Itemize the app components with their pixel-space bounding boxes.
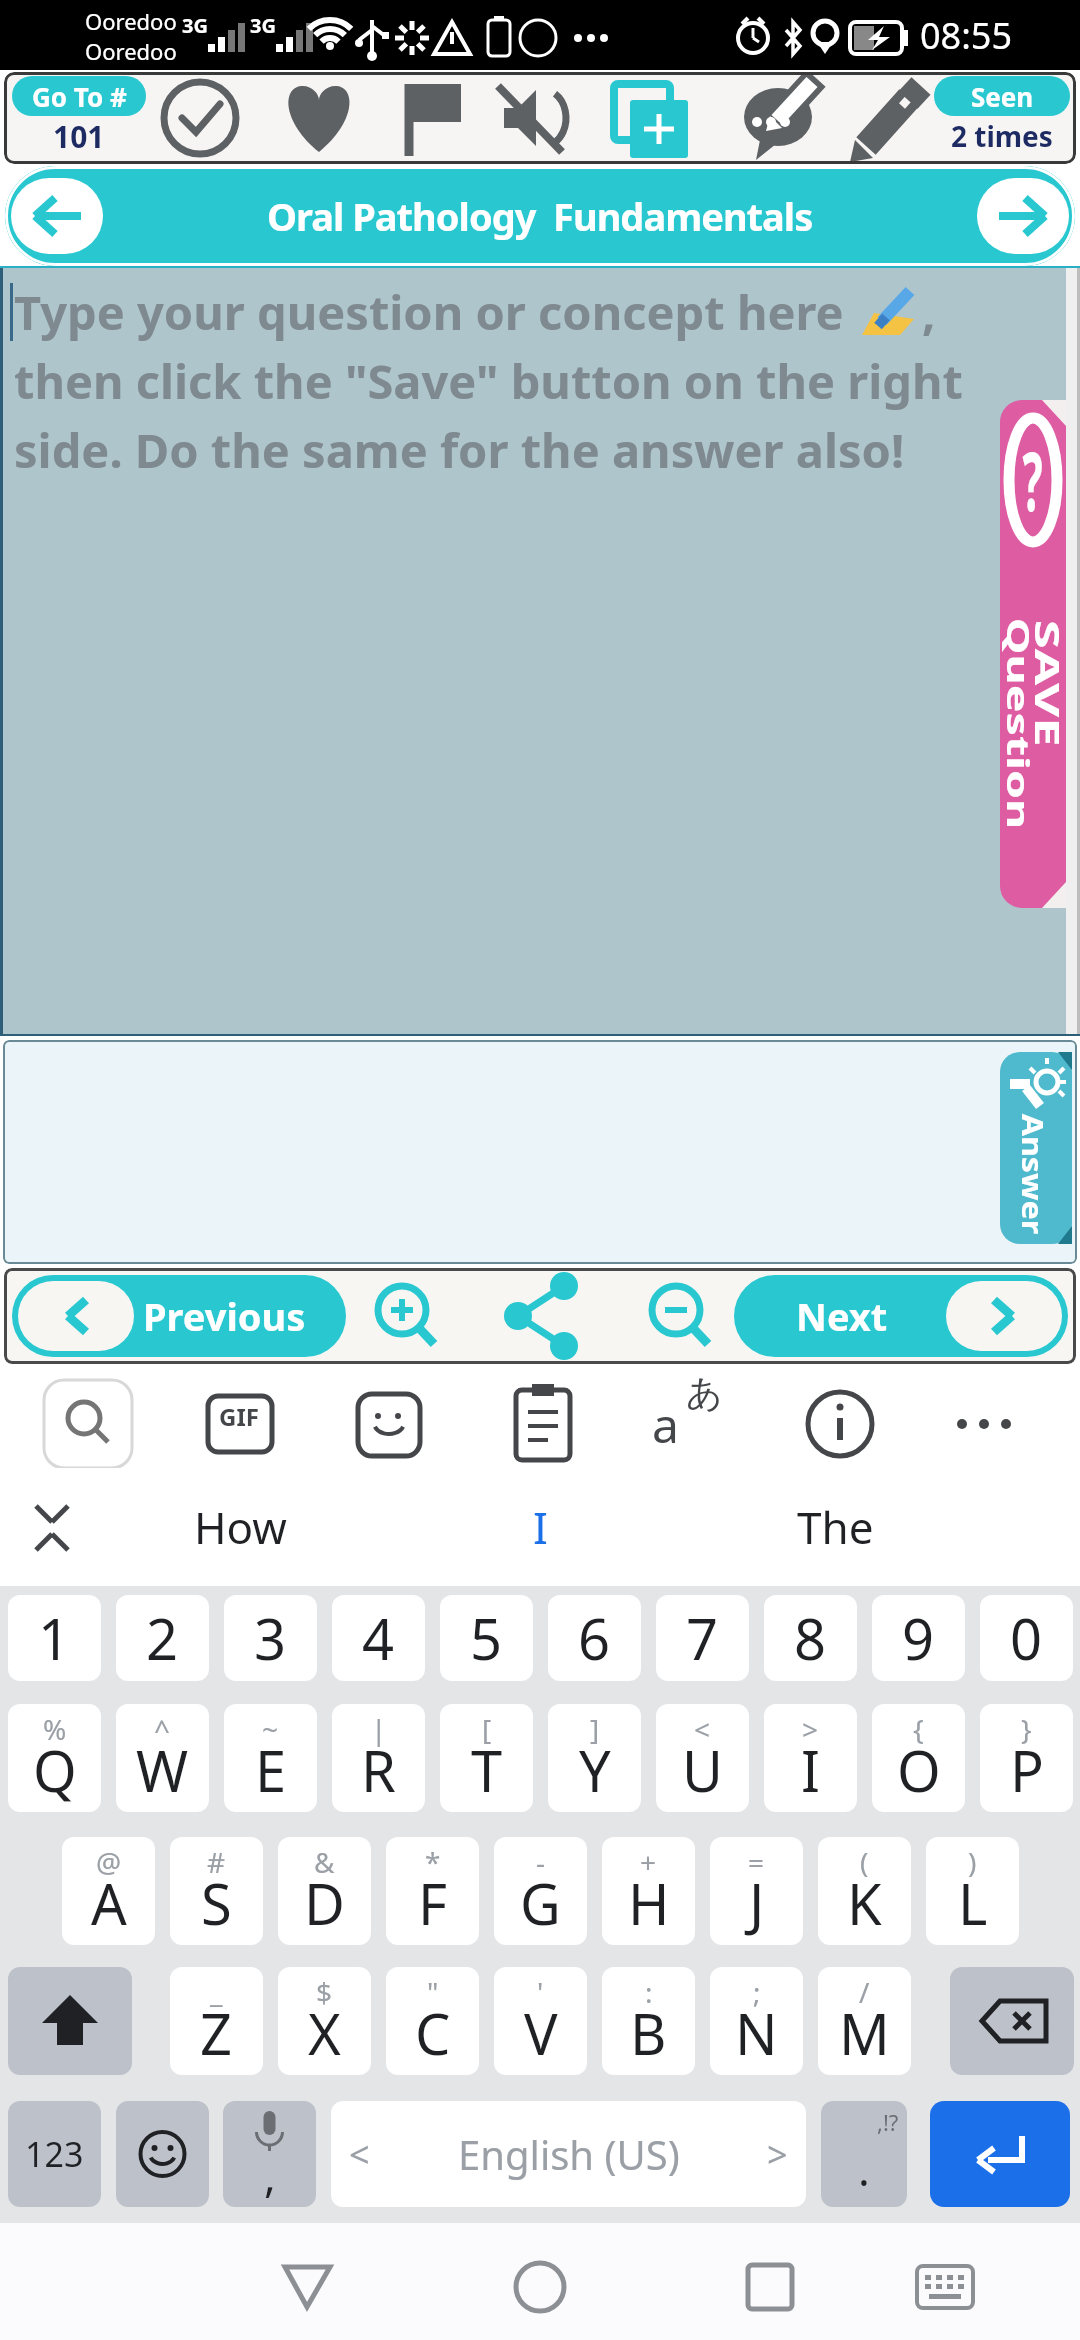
button[interactable]: 8 — [764, 1595, 857, 1681]
button[interactable]: | — [332, 1704, 425, 1812]
button[interactable] — [1000, 386, 1066, 922]
button[interactable]: ,!? — [821, 2101, 907, 2207]
button[interactable]: ' — [494, 1967, 587, 2075]
button[interactable]: " — [386, 1967, 479, 2075]
button[interactable]: $ — [278, 1967, 371, 2075]
staticText: ( — [860, 1843, 869, 1881]
button[interactable] — [608, 74, 692, 162]
staticText: . — [858, 2139, 870, 2199]
button[interactable]: } — [980, 1704, 1073, 1812]
button[interactable]: 1 — [8, 1595, 101, 1681]
button[interactable]: The — [735, 1497, 935, 1557]
button[interactable] — [392, 74, 476, 162]
button[interactable]: / — [818, 1967, 911, 2075]
staticText: J — [749, 1865, 765, 1941]
button[interactable]: [ — [440, 1704, 533, 1812]
button[interactable] — [116, 2101, 209, 2207]
button[interactable]: , — [223, 2101, 316, 2207]
button[interactable]: 0 — [980, 1595, 1073, 1681]
staticText: [ — [482, 1710, 492, 1748]
button[interactable]: 4 — [332, 1595, 425, 1681]
button[interactable]: < — [656, 1704, 749, 1812]
button[interactable]: 3 — [224, 1595, 317, 1681]
staticText: 3 — [254, 1600, 287, 1676]
button[interactable]: Previous — [12, 1275, 346, 1357]
button[interactable]: Next — [734, 1275, 1068, 1357]
button[interactable]: : — [602, 1967, 695, 2075]
staticText: ] — [590, 1710, 600, 1748]
button[interactable]: I — [490, 1497, 590, 1557]
button[interactable]: - — [494, 1837, 587, 1945]
button[interactable] — [796, 1378, 884, 1466]
staticText: P — [1010, 1732, 1044, 1808]
button[interactable] — [847, 74, 931, 162]
button[interactable]: ] — [548, 1704, 641, 1812]
button[interactable]: * — [386, 1837, 479, 1945]
staticText: 2 times — [951, 117, 1053, 155]
button[interactable] — [734, 74, 818, 162]
button[interactable] — [12, 1487, 92, 1567]
button[interactable]: 2 — [116, 1595, 209, 1681]
button[interactable]: ( — [818, 1837, 911, 1945]
button[interactable]: 9 — [872, 1595, 965, 1681]
button[interactable]: _ — [170, 1967, 263, 2075]
button[interactable] — [359, 1271, 449, 1361]
button[interactable]: 6 — [548, 1595, 641, 1681]
button[interactable]: + — [602, 1837, 695, 1945]
button[interactable]: Go To # — [12, 76, 146, 156]
button[interactable] — [196, 1378, 284, 1466]
staticText: Oral Pathology Fundamentals — [267, 190, 813, 242]
button[interactable]: How — [140, 1497, 340, 1557]
staticText: English (US) — [458, 2127, 680, 2181]
staticText: Previous — [143, 1290, 306, 1342]
button[interactable]: ~ — [224, 1704, 317, 1812]
button[interactable] — [895, 2237, 995, 2337]
button[interactable] — [490, 2237, 590, 2337]
button[interactable] — [44, 1378, 132, 1466]
button[interactable] — [635, 1271, 725, 1361]
button[interactable]: @ — [62, 1837, 155, 1945]
button[interactable]: English (US) — [331, 2101, 806, 2207]
staticText: GIF — [219, 1400, 259, 1433]
button[interactable]: 123 — [8, 2101, 101, 2207]
staticText: _ — [210, 1973, 223, 2011]
button[interactable]: & — [278, 1837, 371, 1945]
button[interactable]: { — [872, 1704, 965, 1812]
button[interactable]: Seen — [934, 76, 1070, 156]
button[interactable]: = — [710, 1837, 803, 1945]
button[interactable] — [930, 2101, 1070, 2207]
button[interactable] — [498, 1378, 586, 1466]
staticText: V — [524, 1995, 558, 2071]
staticText: C — [415, 1995, 451, 2071]
button[interactable] — [1000, 1044, 1072, 1252]
button[interactable] — [950, 1967, 1074, 2075]
button[interactable]: 5 — [440, 1595, 533, 1681]
staticText: Go To # — [32, 79, 127, 114]
button[interactable] — [644, 1378, 732, 1466]
staticText: Type your question or concept here — [14, 280, 856, 344]
button[interactable]: # — [170, 1837, 263, 1945]
button[interactable]: > — [764, 1704, 857, 1812]
staticText: I — [801, 1732, 820, 1808]
staticText: R — [361, 1732, 396, 1808]
staticText: > — [767, 2130, 788, 2179]
button[interactable]: ; — [710, 1967, 803, 2075]
button[interactable]: ^ — [116, 1704, 209, 1812]
button[interactable] — [944, 1378, 1032, 1466]
staticText: @ — [96, 1843, 122, 1881]
button[interactable] — [277, 74, 361, 162]
staticText: Ooredoo — [85, 36, 177, 66]
button[interactable] — [497, 1271, 587, 1361]
button[interactable] — [257, 2237, 357, 2337]
button[interactable]: 7 — [656, 1595, 749, 1681]
button[interactable]: % — [8, 1704, 101, 1812]
button[interactable] — [977, 178, 1069, 254]
button[interactable] — [489, 74, 573, 162]
button[interactable] — [346, 1378, 434, 1466]
button[interactable] — [11, 178, 103, 254]
button[interactable]: ) — [926, 1837, 1019, 1945]
button[interactable] — [158, 74, 242, 162]
button[interactable] — [8, 1967, 132, 2075]
button[interactable] — [720, 2237, 820, 2337]
staticText: , — [264, 2145, 276, 2205]
